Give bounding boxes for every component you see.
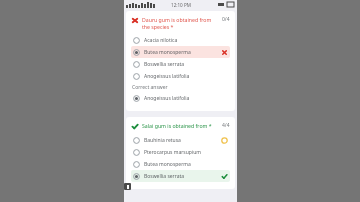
button[interactable]: Acacia nilotica xyxy=(131,34,230,46)
staticText: Pterocarpus marsupium xyxy=(144,149,221,156)
button[interactable]: Bauhinia retusa xyxy=(131,134,230,146)
staticText: Boswellia serrata xyxy=(144,61,221,68)
staticText: Boswellia serrata xyxy=(144,173,221,180)
staticText: Anogeissus latifolia xyxy=(144,73,221,80)
staticText: 0/4 xyxy=(222,16,230,23)
other: Notification badge xyxy=(124,183,131,190)
staticText: Anogeissus latifolia xyxy=(144,95,221,102)
staticText: Butea monosperma xyxy=(144,49,221,56)
staticText: Acacia nilotica xyxy=(144,37,221,44)
staticText: 12:10 PM xyxy=(171,2,191,8)
button[interactable]: Boswellia serrata xyxy=(131,58,230,70)
button[interactable]: Anogeissus latifolia xyxy=(131,70,230,82)
button[interactable]: Anogeissus latifolia xyxy=(131,92,230,104)
staticText: Bauhinia retusa xyxy=(144,137,221,144)
button[interactable]: Pterocarpus marsupium xyxy=(131,146,230,158)
staticText: Dauru gum is obtained from the species * xyxy=(142,16,219,30)
staticText: 4/4 xyxy=(222,122,230,129)
button[interactable]: Butea monosperma xyxy=(131,158,230,170)
staticText: Salai gum is obtained from * xyxy=(142,122,219,129)
button[interactable]: Butea monosperma xyxy=(131,46,230,58)
staticText: Butea monosperma xyxy=(144,161,221,168)
button[interactable]: Boswellia serrata xyxy=(131,170,230,182)
staticText: Correct answer xyxy=(132,84,168,91)
